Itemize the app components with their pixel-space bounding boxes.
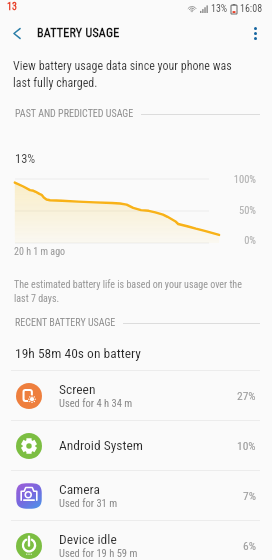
staticText: 10%: [237, 439, 256, 452]
staticText: 7%: [243, 489, 256, 502]
staticText: 16:08: [240, 3, 263, 15]
staticText: Camera: [59, 481, 100, 497]
button[interactable]: More options: [238, 18, 272, 48]
staticText: Used for 19 h 59 m: [59, 547, 138, 559]
staticText: Used for 4 h 34 m: [59, 397, 133, 409]
staticText: View battery usage data since your phone…: [13, 59, 249, 90]
staticText: 19h 58m 40s on battery: [15, 345, 141, 361]
staticText: Screen: [59, 381, 96, 397]
staticText: 13%: [211, 3, 228, 15]
staticText: The estimated battery life is based on y…: [14, 279, 252, 305]
staticText: 13%: [15, 151, 36, 166]
staticText: Android System: [59, 437, 143, 453]
button[interactable]: Camera: [0, 471, 272, 520]
staticText: RECENT BATTERY USAGE: [15, 317, 116, 329]
button[interactable]: Android System: [0, 421, 272, 470]
staticText: 100%: [216, 173, 256, 185]
staticText: 6%: [243, 539, 256, 552]
staticText: 0%: [216, 234, 256, 246]
button[interactable]: Screen: [0, 371, 272, 420]
staticText: BATTERY USAGE: [37, 26, 120, 40]
staticText: 27%: [237, 389, 256, 402]
staticText: Used for 31 m: [59, 497, 118, 509]
staticText: Device idle: [59, 531, 117, 547]
button[interactable]: Back: [0, 18, 34, 48]
staticText: 50%: [216, 204, 256, 216]
staticText: 20 h 1 m ago: [14, 246, 66, 258]
button[interactable]: Device idle: [0, 521, 272, 560]
staticText: PAST AND PREDICTED USAGE: [15, 108, 134, 120]
staticText: 13: [7, 1, 17, 13]
